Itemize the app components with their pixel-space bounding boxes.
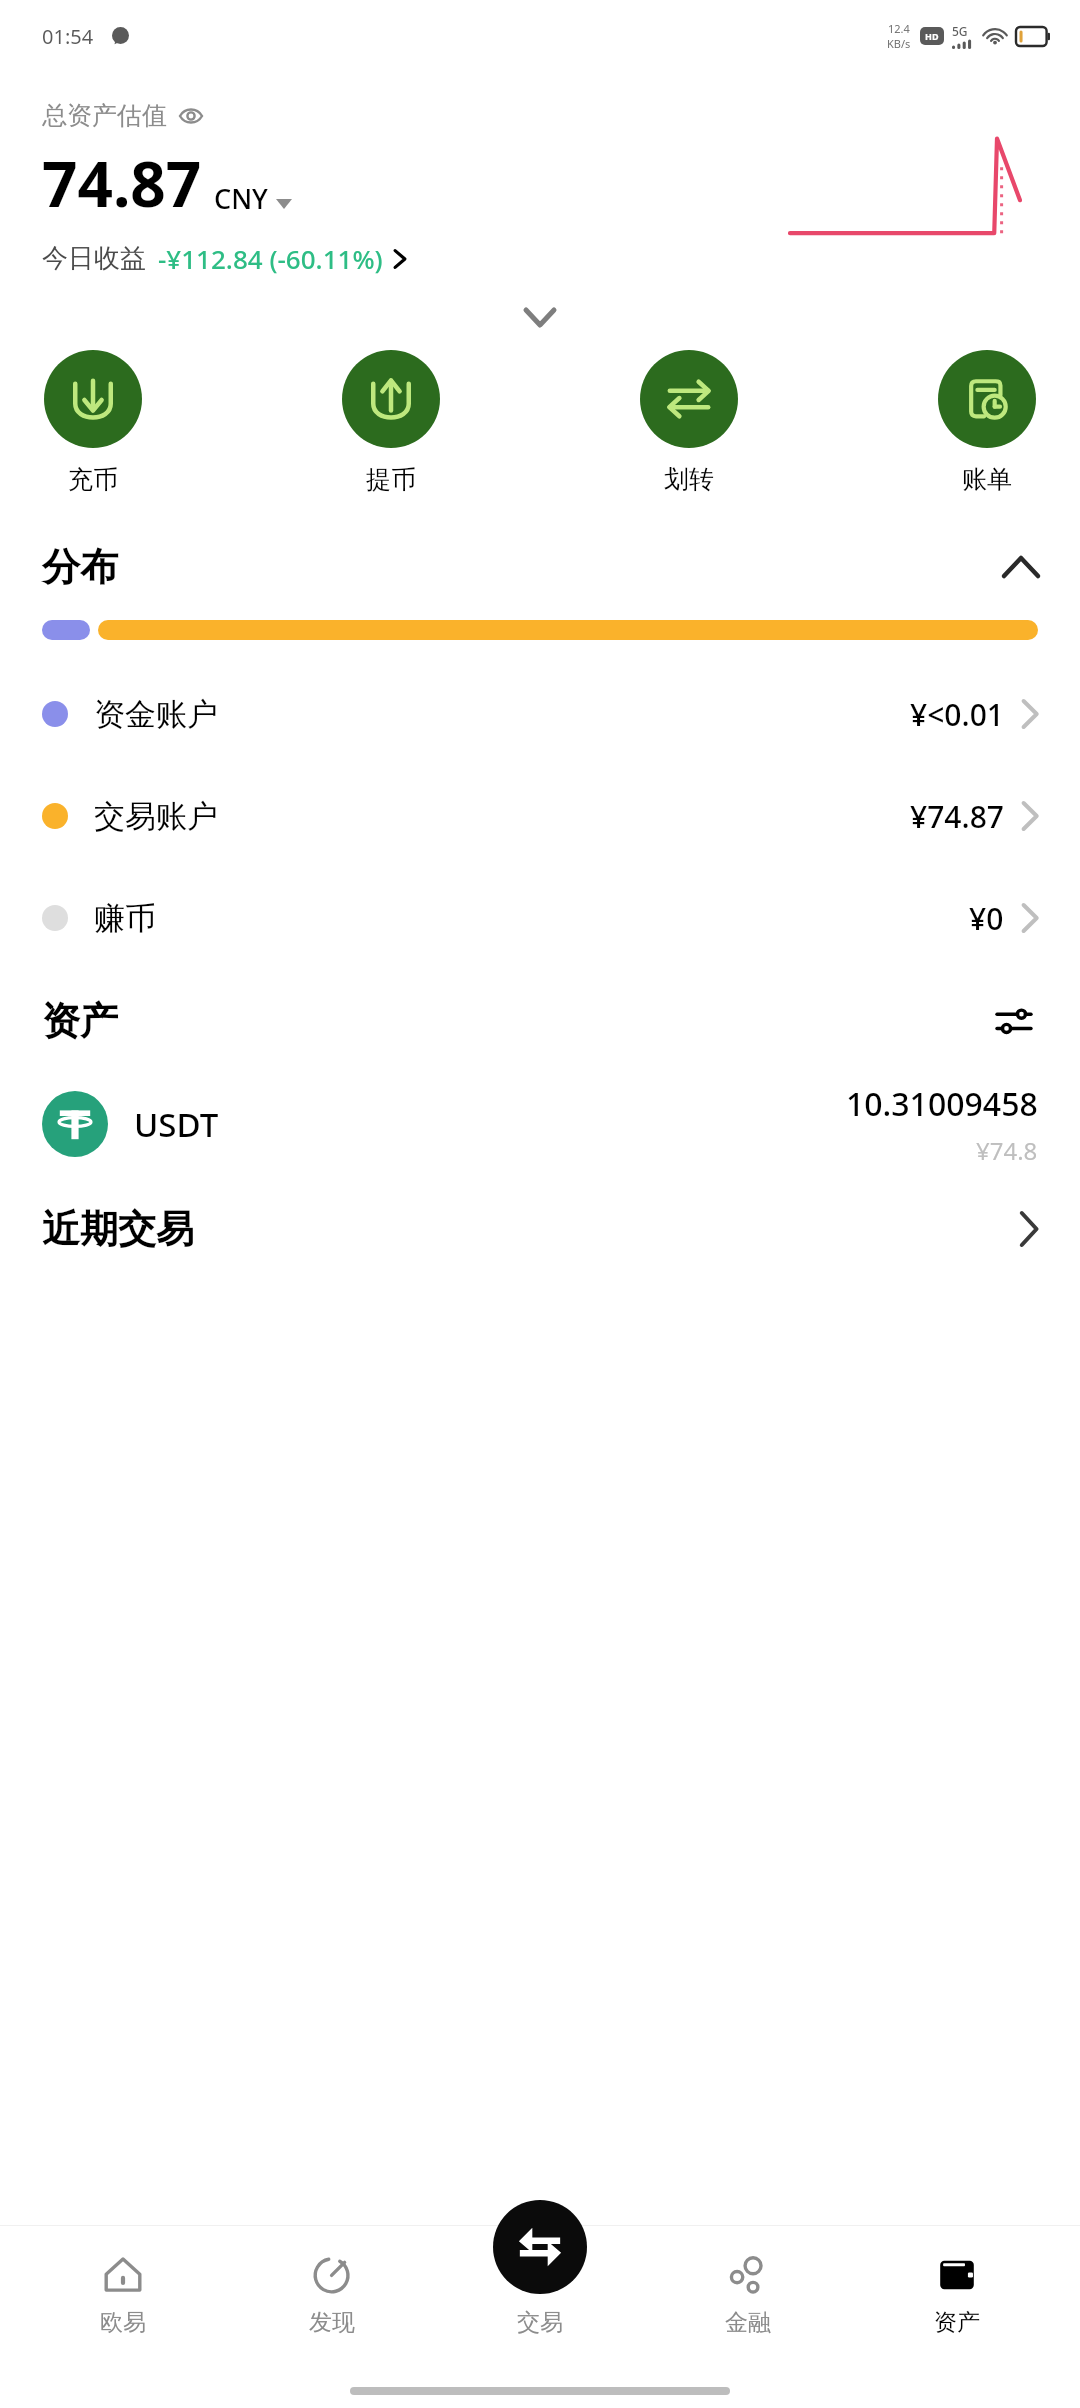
staticText: HD xyxy=(925,30,939,42)
button[interactable]: 74.87 xyxy=(42,141,292,225)
button[interactable]: Assets xyxy=(872,2226,1042,2337)
button[interactable]: 资金账户 xyxy=(0,663,1080,765)
other: Discover xyxy=(311,2254,353,2296)
staticText: 资金账户 xyxy=(94,695,218,734)
staticText: 欧易 xyxy=(100,2308,146,2337)
button[interactable]: 今日收益 xyxy=(42,241,407,276)
staticText: ¥74.8 xyxy=(976,1134,1038,1167)
button[interactable]: 赚币 xyxy=(0,867,1080,969)
button[interactable]: Transfer xyxy=(636,346,742,499)
staticText: ¥74.87 xyxy=(910,796,1004,837)
button[interactable]: 分布 xyxy=(0,543,1080,591)
button[interactable]: Withdraw xyxy=(338,346,444,499)
button[interactable]: 交易 xyxy=(455,2226,625,2337)
other: Transfer xyxy=(665,375,713,423)
button[interactable]: Trade xyxy=(493,2200,587,2294)
staticText: 近期交易 xyxy=(42,1205,194,1253)
staticText: 交易 xyxy=(517,2308,563,2337)
staticText: 发现 xyxy=(309,2308,355,2337)
staticText: USDT xyxy=(134,1102,219,1147)
button[interactable]: 总资产估值 xyxy=(42,100,203,131)
staticText: 今日收益 xyxy=(42,242,146,275)
staticText: 5G xyxy=(952,23,968,39)
other: Bills xyxy=(963,375,1011,423)
staticText: 交易账户 xyxy=(94,797,218,836)
staticText: 12.4 xyxy=(888,21,910,36)
other: Assets xyxy=(936,2254,978,2296)
staticText: ¥0 xyxy=(969,898,1004,939)
staticText: 01:54 xyxy=(42,23,94,50)
button[interactable]: Home xyxy=(38,2226,208,2337)
button[interactable]: Discover xyxy=(247,2226,417,2337)
other: Withdraw xyxy=(367,375,415,423)
button[interactable]: Expand xyxy=(512,294,568,340)
staticText: KB/s xyxy=(887,36,911,51)
button[interactable]: Finance xyxy=(663,2226,833,2337)
other: Home xyxy=(102,2254,144,2296)
other: Toggle balance visibility xyxy=(179,104,203,128)
button[interactable]: 交易账户 xyxy=(0,765,1080,867)
button[interactable]: Deposit xyxy=(40,346,146,499)
staticText: 提币 xyxy=(366,464,416,495)
staticText: ¥<0.01 xyxy=(910,694,1004,735)
staticText: -¥112.84 (-60.11%) xyxy=(158,241,383,276)
button[interactable]: USDT xyxy=(0,1069,1080,1179)
staticText: CNY xyxy=(214,180,268,217)
staticText: 账单 xyxy=(962,464,1012,495)
staticText: 赚币 xyxy=(94,899,156,938)
staticText: 分布 xyxy=(42,543,118,591)
staticText: 充币 xyxy=(68,464,118,495)
staticText: 74.87 xyxy=(42,141,202,225)
button[interactable]: Bills xyxy=(934,346,1040,499)
staticText: 金融 xyxy=(725,2308,771,2337)
staticText: 10.31009458 xyxy=(846,1082,1038,1126)
staticText: 划转 xyxy=(664,464,714,495)
button[interactable]: 近期交易 xyxy=(0,1205,1080,1253)
staticText: 资产 xyxy=(42,997,118,1045)
other: Finance xyxy=(727,2254,769,2296)
staticText: 总资产估值 xyxy=(42,100,167,131)
staticText: 资产 xyxy=(934,2308,980,2337)
other: Deposit xyxy=(69,375,117,423)
button[interactable]: Filter xyxy=(990,997,1038,1045)
